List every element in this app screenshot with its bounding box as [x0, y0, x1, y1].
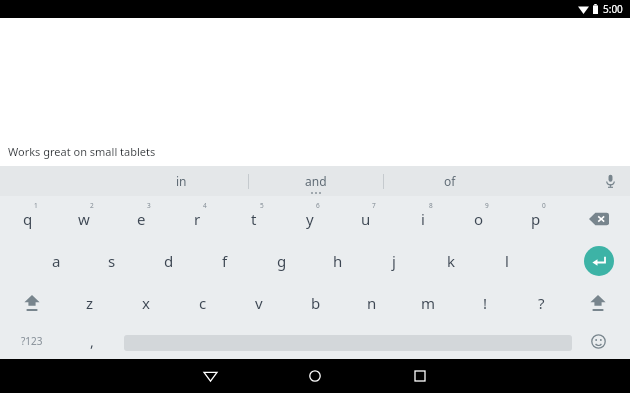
- staticText: 6: [316, 201, 320, 210]
- staticText: h: [333, 251, 343, 271]
- staticText: !: [483, 293, 488, 313]
- staticText: m: [421, 293, 436, 313]
- button[interactable]: h: [310, 240, 366, 282]
- button[interactable]: e: [113, 198, 169, 240]
- button[interactable]: Shift: [574, 282, 622, 324]
- staticText: 5: [260, 201, 264, 210]
- button[interactable]: j: [366, 240, 422, 282]
- button[interactable]: l: [479, 240, 535, 282]
- staticText: a: [52, 251, 61, 271]
- button[interactable]: p: [508, 198, 564, 240]
- staticText: p: [531, 209, 541, 229]
- button[interactable]: of: [390, 166, 510, 196]
- staticText: z: [86, 293, 94, 313]
- staticText: in: [176, 173, 187, 189]
- staticText: 9: [485, 201, 489, 210]
- button[interactable]: y: [282, 198, 338, 240]
- button[interactable]: b: [288, 282, 344, 324]
- staticText: x: [142, 293, 150, 313]
- staticText: f: [222, 251, 228, 271]
- button[interactable]: Home: [297, 359, 333, 393]
- staticText: 5:00: [603, 2, 623, 16]
- button[interactable]: w: [56, 198, 112, 240]
- button[interactable]: x: [118, 282, 174, 324]
- staticText: d: [164, 251, 174, 271]
- button[interactable]: Emoji: [582, 324, 614, 358]
- button[interactable]: m: [400, 282, 456, 324]
- staticText: n: [367, 293, 377, 313]
- button[interactable]: s: [84, 240, 140, 282]
- button[interactable]: i: [395, 198, 451, 240]
- button[interactable]: !: [457, 282, 513, 324]
- staticText: g: [277, 251, 287, 271]
- staticText: b: [311, 293, 321, 313]
- staticText: Works great on small tablets: [8, 144, 156, 159]
- button[interactable]: d: [141, 240, 197, 282]
- button[interactable]: q: [0, 198, 56, 240]
- staticText: y: [306, 209, 314, 229]
- button[interactable]: k: [423, 240, 479, 282]
- button[interactable]: and: [256, 166, 376, 196]
- button[interactable]: ,: [72, 324, 112, 358]
- staticText: of: [444, 173, 456, 189]
- button[interactable]: in: [121, 166, 241, 196]
- staticText: and: [305, 173, 327, 189]
- staticText: v: [255, 293, 263, 313]
- button[interactable]: f: [197, 240, 253, 282]
- staticText: w: [78, 209, 90, 229]
- staticText: j: [392, 251, 396, 271]
- staticText: t: [251, 209, 257, 229]
- staticText: k: [447, 251, 456, 271]
- staticText: r: [194, 209, 201, 229]
- staticText: s: [108, 251, 116, 271]
- button[interactable]: z: [62, 282, 118, 324]
- button[interactable]: Enter: [576, 240, 622, 282]
- staticText: 3: [147, 201, 151, 210]
- staticText: i: [421, 209, 425, 229]
- staticText: 8: [429, 201, 433, 210]
- button[interactable]: ?123: [4, 324, 60, 358]
- staticText: ?: [538, 293, 545, 313]
- button[interactable]: u: [338, 198, 394, 240]
- staticText: o: [474, 209, 484, 229]
- staticText: ,: [90, 332, 94, 351]
- staticText: l: [505, 251, 509, 271]
- button[interactable]: Back: [192, 359, 228, 393]
- staticText: 2: [90, 201, 94, 210]
- button[interactable]: r: [169, 198, 225, 240]
- staticText: e: [137, 209, 146, 229]
- staticText: c: [199, 293, 207, 313]
- button[interactable]: v: [231, 282, 287, 324]
- staticText: 7: [372, 201, 376, 210]
- button[interactable]: ?: [513, 282, 569, 324]
- staticText: ?123: [21, 334, 43, 348]
- button[interactable]: Voice input: [594, 166, 626, 196]
- staticText: 0: [542, 201, 546, 210]
- button[interactable]: t: [226, 198, 282, 240]
- staticText: u: [361, 209, 371, 229]
- button[interactable]: n: [344, 282, 400, 324]
- button[interactable]: Shift: [8, 282, 56, 324]
- button[interactable]: o: [451, 198, 507, 240]
- button[interactable]: c: [175, 282, 231, 324]
- button[interactable]: Backspace: [576, 198, 622, 240]
- staticText: q: [23, 209, 33, 229]
- staticText: 4: [203, 201, 207, 210]
- button[interactable]: Recent apps: [402, 359, 438, 393]
- staticText: 1: [34, 201, 38, 210]
- button[interactable]: a: [28, 240, 84, 282]
- button[interactable]: g: [254, 240, 310, 282]
